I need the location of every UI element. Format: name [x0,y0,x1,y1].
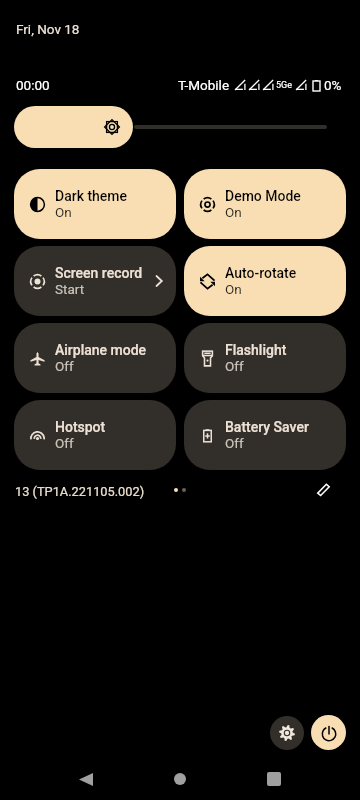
staticText: Start [55,281,85,297]
button[interactable]: Flashlight [184,323,346,393]
staticText: Demo Mode [225,188,301,204]
button[interactable]: Settings [270,716,304,750]
staticText: Battery Saver [225,419,309,435]
button[interactable]: Auto-rotate [184,246,346,316]
staticText: Hotspot [55,419,106,435]
button[interactable]: Airplane mode [14,323,176,393]
staticText: Off [225,358,244,374]
button[interactable]: Hotspot [14,400,176,470]
staticText: 00:00 [16,77,50,93]
button[interactable]: Dark theme [14,169,176,239]
button[interactable]: Back [66,762,106,797]
staticText: On [55,204,72,220]
button[interactable]: Power [311,715,346,750]
staticText: Off [55,358,74,374]
staticText: Airplane mode [55,342,147,358]
button[interactable]: Battery Saver [184,400,346,470]
staticText: On [225,281,242,297]
staticText: Flashlight [225,342,287,358]
staticText: Off [55,435,74,451]
button[interactable]: Home [160,761,200,796]
staticText: Dark theme [55,188,128,204]
button[interactable]: Demo Mode [184,169,346,239]
staticText: 5Ge [276,80,292,91]
button[interactable] [14,106,133,148]
staticText: Screen record [55,265,143,281]
staticText: Fri, Nov 18 [16,21,80,37]
staticText: T-Mobile [178,77,230,93]
button[interactable]: Recents [254,761,294,796]
staticText: Auto-rotate [225,265,297,281]
button[interactable]: Edit tiles [311,477,335,501]
button[interactable]: Screen record [14,246,176,316]
staticText: Off [225,435,244,451]
staticText: On [225,204,242,220]
staticText: 0% [324,77,342,93]
staticText: 13 (TP1A.221105.002) [15,484,145,499]
